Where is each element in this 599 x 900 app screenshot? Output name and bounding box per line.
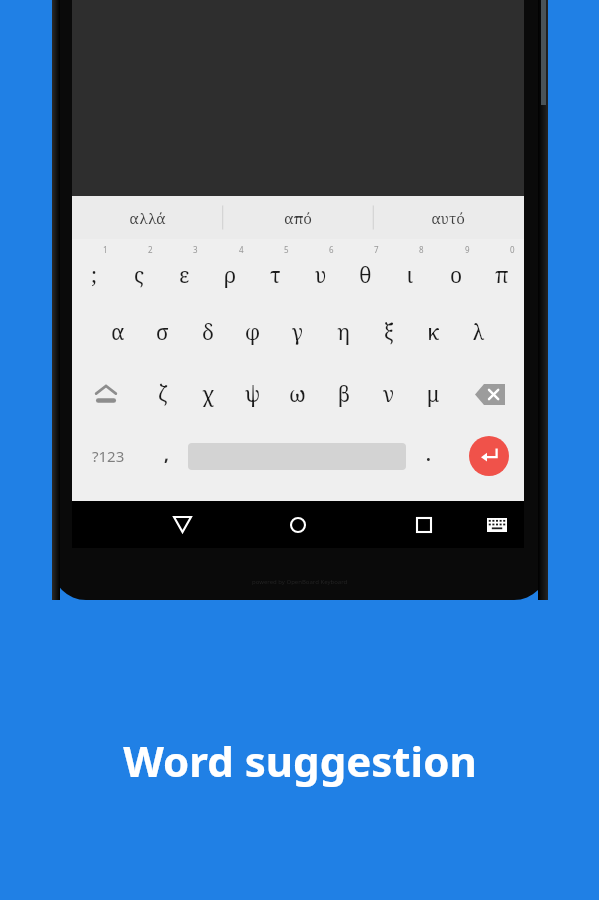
button[interactable]: Shift <box>72 363 140 425</box>
staticText: κ <box>428 318 440 347</box>
button[interactable]: η <box>321 301 366 363</box>
button[interactable]: σ <box>140 301 185 363</box>
button[interactable]: Space <box>188 425 406 487</box>
button[interactable]: ; <box>72 239 117 301</box>
staticText: χ <box>202 380 214 409</box>
staticText: α <box>111 318 125 347</box>
staticText: ζ <box>158 380 167 409</box>
staticText: από <box>284 208 312 228</box>
button[interactable]: από <box>223 196 373 239</box>
staticText: . <box>426 443 431 466</box>
staticText: , <box>164 443 169 466</box>
button[interactable]: λ <box>456 301 501 363</box>
button[interactable]: χ <box>185 363 230 425</box>
staticText: αυτό <box>431 208 465 228</box>
staticText: ε <box>179 261 190 290</box>
button[interactable]: Back <box>152 501 212 548</box>
staticText: 4 <box>239 244 244 255</box>
button[interactable]: Enter <box>454 425 524 487</box>
button[interactable]: ε <box>162 239 207 301</box>
staticText: ο <box>450 261 463 290</box>
button[interactable]: ο <box>434 239 479 301</box>
staticText: 0 <box>510 244 515 255</box>
staticText: φ <box>245 318 261 347</box>
staticText: τ <box>270 261 281 290</box>
staticText: θ <box>359 261 372 290</box>
button[interactable]: ι <box>388 239 433 301</box>
button[interactable]: θ <box>343 239 388 301</box>
button[interactable]: τ <box>253 239 298 301</box>
staticText: σ <box>156 318 169 347</box>
button[interactable]: Home <box>268 501 328 548</box>
staticText: 2 <box>148 244 153 255</box>
button[interactable]: κ <box>411 301 456 363</box>
button[interactable]: Backspace <box>456 363 524 425</box>
button[interactable]: ζ <box>140 363 185 425</box>
button[interactable]: ν <box>366 363 411 425</box>
staticText: 3 <box>193 244 198 255</box>
staticText: η <box>337 318 350 347</box>
button[interactable]: Switch keyboard <box>470 501 524 548</box>
button[interactable]: ρ <box>208 239 253 301</box>
button[interactable]: γ <box>275 301 320 363</box>
staticText: υ <box>315 261 327 290</box>
staticText: powered by OpenBoard Keyboard <box>252 578 348 586</box>
staticText: ι <box>407 261 414 290</box>
staticText: ?123 <box>92 446 125 466</box>
button[interactable]: υ <box>298 239 343 301</box>
button[interactable]: π <box>479 239 524 301</box>
button[interactable]: β <box>321 363 366 425</box>
staticText: ; <box>91 261 98 290</box>
staticText: δ <box>202 318 214 347</box>
staticText: π <box>495 261 509 290</box>
button[interactable]: ψ <box>230 363 275 425</box>
button[interactable]: αυτό <box>373 196 523 239</box>
staticText: 7 <box>374 244 379 255</box>
button[interactable]: δ <box>185 301 230 363</box>
button[interactable]: . <box>406 425 450 487</box>
button[interactable]: ξ <box>366 301 411 363</box>
button[interactable]: φ <box>230 301 275 363</box>
button[interactable]: αλλά <box>72 196 222 239</box>
staticText: λ <box>472 318 485 347</box>
button[interactable]: α <box>95 301 140 363</box>
staticText: γ <box>292 318 304 347</box>
button[interactable]: ω <box>275 363 320 425</box>
button[interactable]: ς <box>117 239 162 301</box>
staticText: 8 <box>419 244 424 255</box>
button[interactable]: μ <box>411 363 456 425</box>
staticText: μ <box>427 380 440 409</box>
staticText: ψ <box>245 380 261 409</box>
staticText: αλλά <box>129 208 166 228</box>
staticText: 5 <box>284 244 289 255</box>
staticText: β <box>338 380 350 409</box>
staticText: ς <box>134 261 145 290</box>
button[interactable]: , <box>144 425 188 487</box>
staticText: 6 <box>329 244 334 255</box>
staticText: ν <box>383 380 395 409</box>
staticText: ω <box>289 380 306 409</box>
staticText: 9 <box>465 244 470 255</box>
button[interactable]: Recent apps <box>394 501 454 548</box>
staticText: ρ <box>224 261 237 290</box>
button[interactable]: ?123 <box>72 425 144 487</box>
staticText: ξ <box>384 318 394 347</box>
staticText: 1 <box>103 244 108 255</box>
staticText: Word suggestion <box>123 732 477 789</box>
